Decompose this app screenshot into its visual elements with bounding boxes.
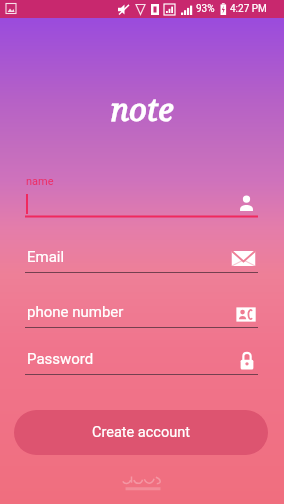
staticText: phone number [27,303,124,321]
button[interactable]: name [25,175,258,218]
staticText: Email [27,248,65,266]
staticText: Password [27,350,94,368]
staticText: 93% [196,3,215,15]
button[interactable]: name [238,194,255,211]
button[interactable]: Password [236,350,258,372]
button[interactable]: phone number [235,303,258,326]
button[interactable]: Email [231,246,256,271]
button[interactable]: Password [25,333,258,376]
button[interactable]: Email [25,231,258,274]
staticText: Create account [92,424,190,441]
staticText: note [0,88,284,130]
staticText: name [26,175,54,188]
button[interactable]: phone number [25,286,258,329]
staticText: 4:27 PM [230,3,267,15]
button[interactable]: Create account [14,410,268,455]
